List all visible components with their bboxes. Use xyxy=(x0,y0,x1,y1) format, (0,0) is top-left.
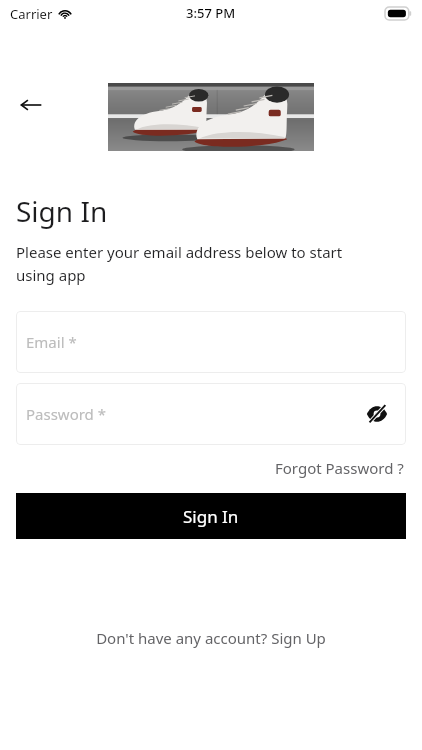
button[interactable]: Back xyxy=(14,88,48,122)
button[interactable]: Sign In xyxy=(16,493,406,539)
staticText: Sign In xyxy=(183,505,239,528)
button[interactable]: Toggle password visibility xyxy=(362,399,392,429)
staticText: Please enter your email address below to… xyxy=(16,242,376,285)
staticText: Email * xyxy=(26,332,77,352)
staticText: Carrier xyxy=(10,5,53,23)
staticText: Forgot Password ? xyxy=(275,458,404,478)
button[interactable]: Password * xyxy=(16,383,406,445)
staticText: Password * xyxy=(26,404,107,424)
staticText: 3:57 PM xyxy=(186,4,236,22)
button[interactable]: Email * xyxy=(16,311,406,373)
staticText: Sign In xyxy=(16,192,108,230)
button[interactable]: Don't have any account? Sign Up xyxy=(90,624,332,652)
staticText: Don't have any account? Sign Up xyxy=(96,628,326,648)
button[interactable]: Forgot Password ? xyxy=(273,455,406,481)
